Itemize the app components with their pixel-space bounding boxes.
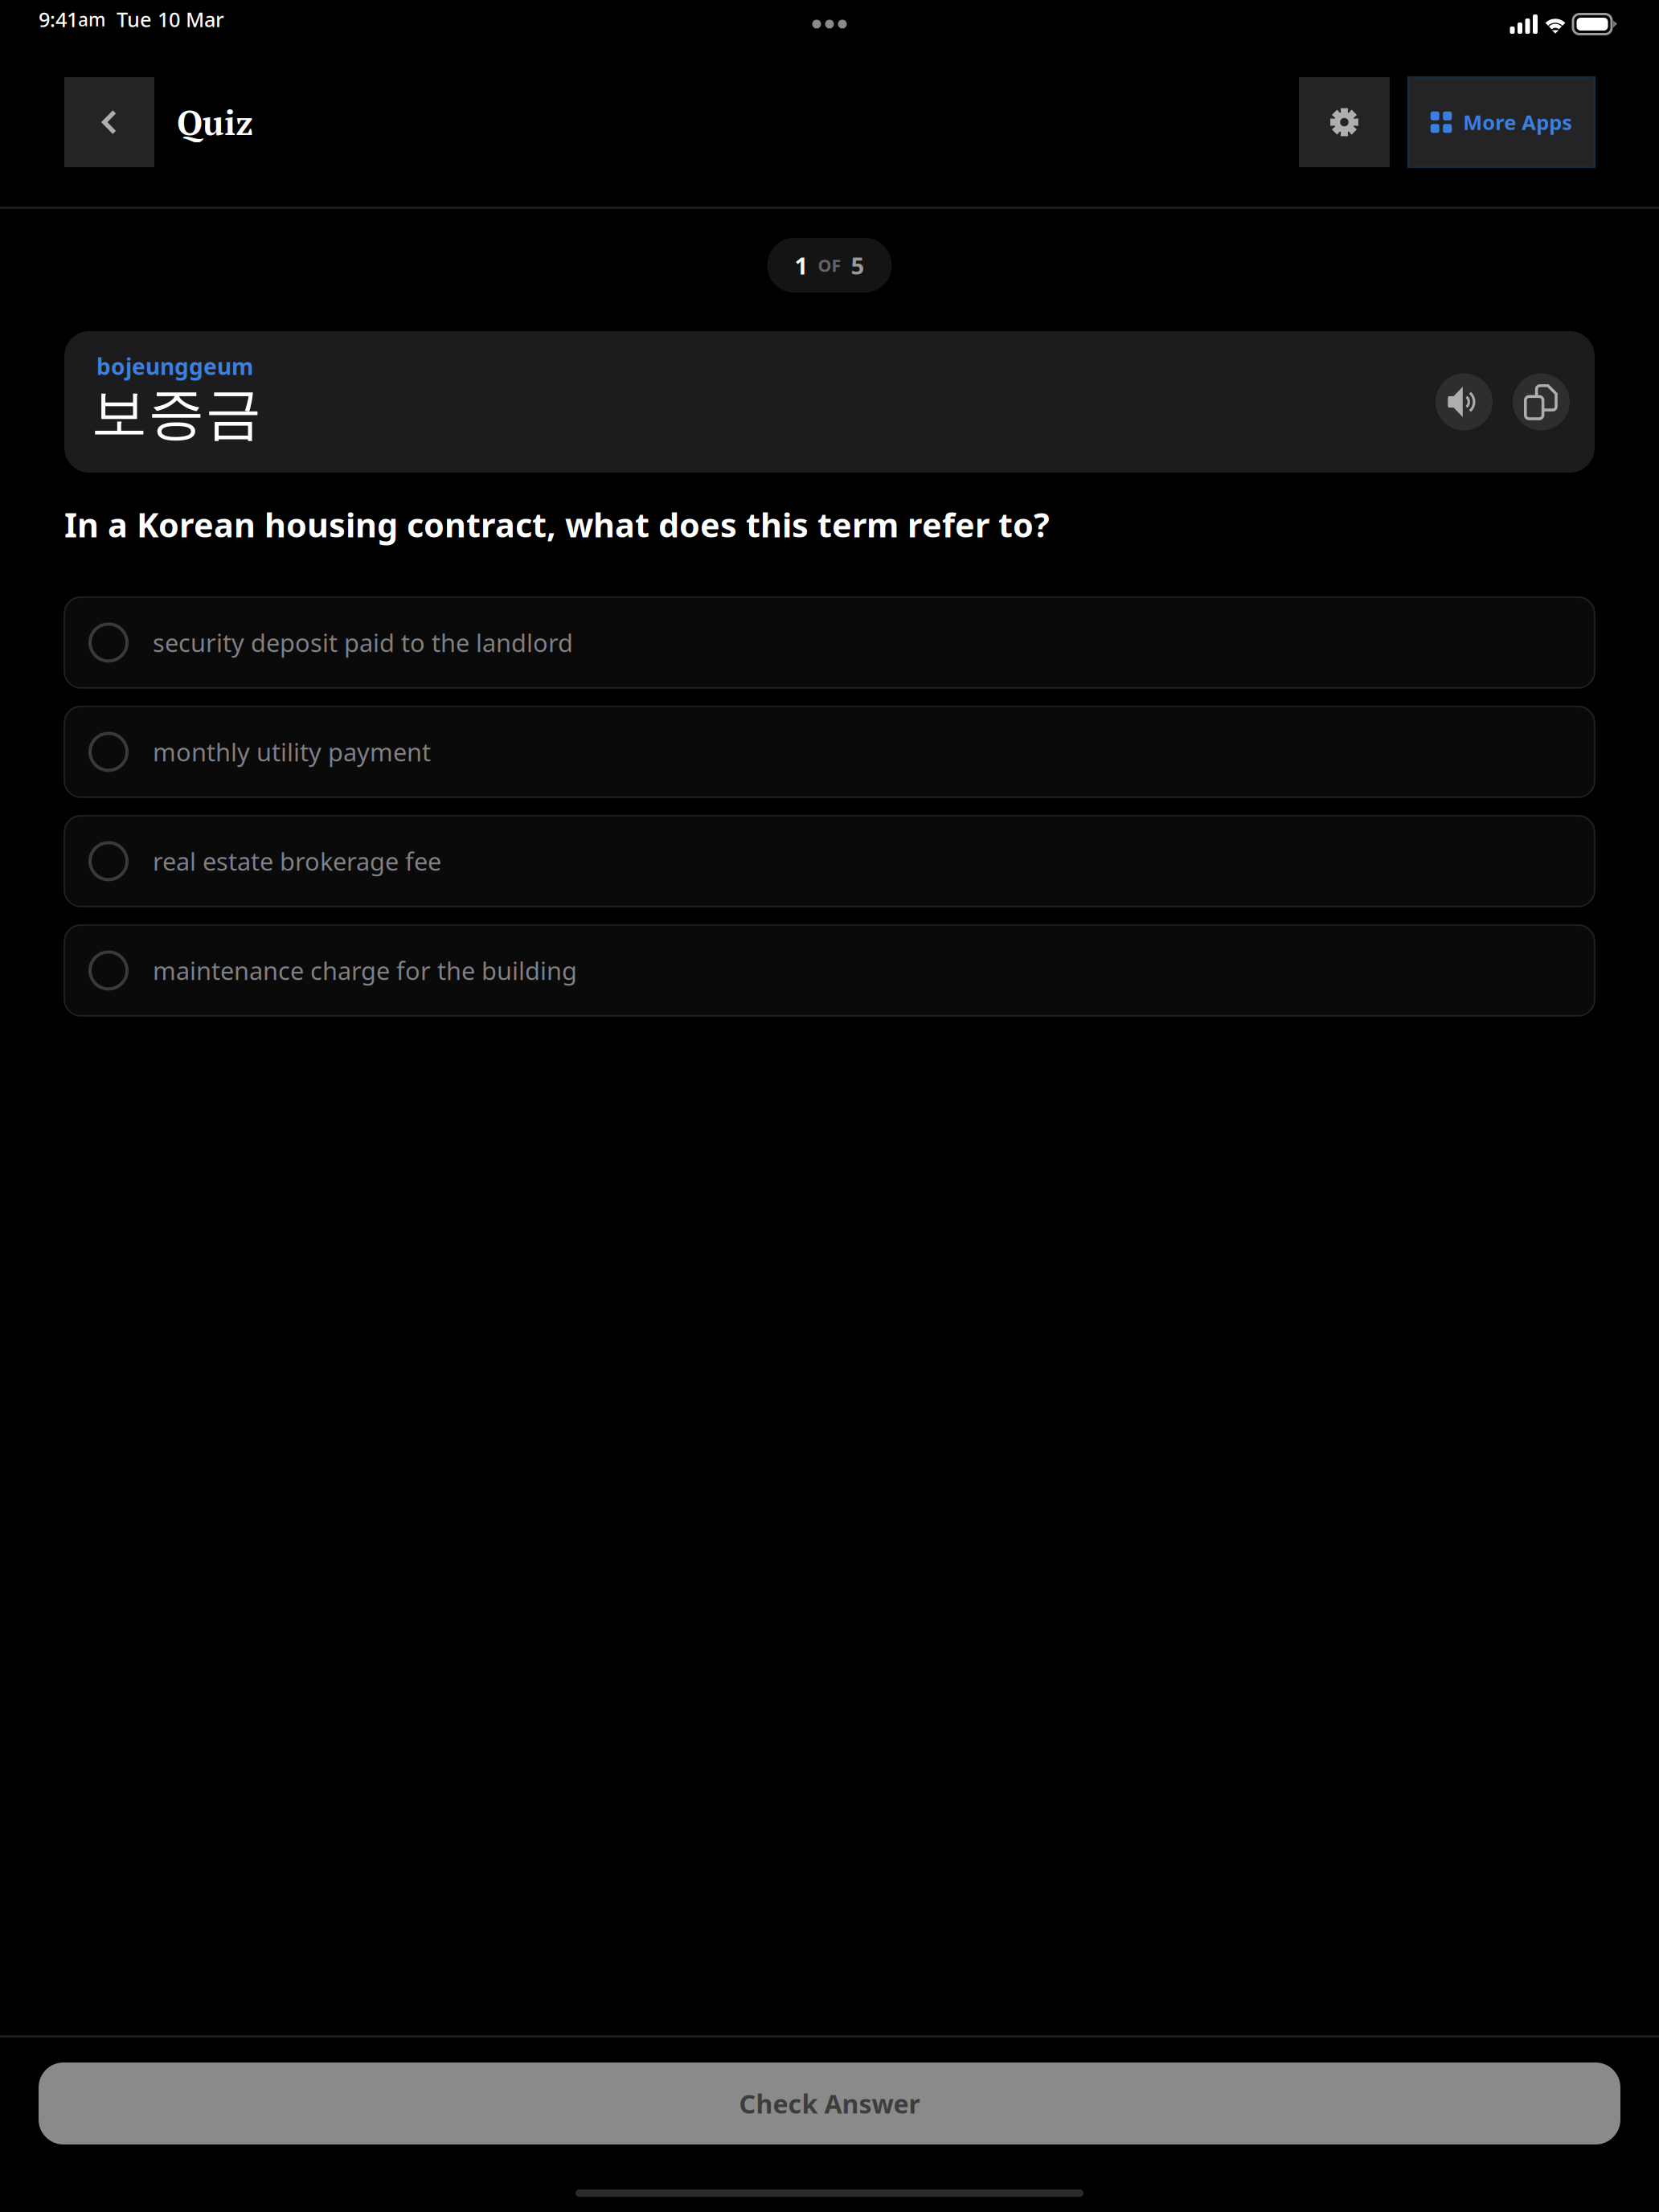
- button[interactable]: Settings: [1299, 77, 1390, 167]
- staticText: 9:41: [39, 6, 78, 33]
- staticText: Quiz: [177, 99, 253, 145]
- button[interactable]: Copy: [1513, 373, 1570, 430]
- button[interactable]: Play pronunciation: [1436, 373, 1493, 430]
- button[interactable]: real estate brokerage fee: [64, 816, 1595, 907]
- staticText: OF: [818, 254, 841, 277]
- button[interactable]: monthly utility payment: [64, 706, 1595, 797]
- staticText: monthly utility payment: [153, 735, 431, 768]
- staticText: 보증금: [91, 379, 262, 449]
- staticText: In a Korean housing contract, what does …: [64, 502, 1050, 546]
- button[interactable]: More Apps: [1408, 77, 1595, 167]
- staticText: am: [78, 7, 105, 31]
- staticText: real estate brokerage fee: [153, 845, 441, 877]
- button[interactable]: security deposit paid to the landlord: [64, 597, 1595, 688]
- staticText: 5: [851, 250, 864, 281]
- staticText: security deposit paid to the landlord: [153, 626, 573, 659]
- button[interactable]: maintenance charge for the building: [64, 925, 1595, 1016]
- staticText: Tue 10 Mar: [105, 6, 224, 33]
- staticText: More Apps: [1463, 109, 1572, 136]
- staticText: maintenance charge for the building: [153, 954, 577, 987]
- button[interactable]: Back: [64, 77, 154, 167]
- staticText: 1: [795, 250, 808, 281]
- button[interactable]: Check Answer: [39, 2062, 1620, 2144]
- staticText: Check Answer: [739, 2086, 920, 2121]
- staticText: bojeunggeum: [96, 351, 253, 381]
